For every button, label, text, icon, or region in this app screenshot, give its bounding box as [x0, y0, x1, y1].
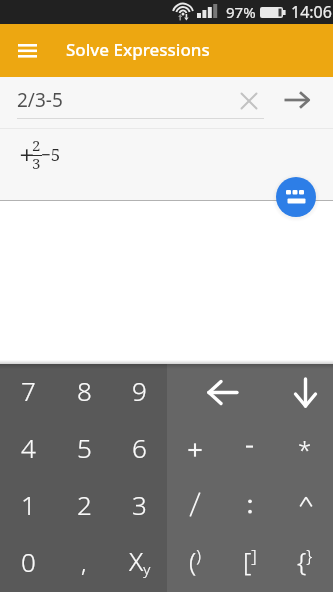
staticText: 2 [32, 135, 41, 155]
staticText: () [189, 543, 201, 578]
staticText: {} [297, 543, 313, 578]
staticText: 2/3-5 [17, 87, 63, 113]
button[interactable]: 9 [112, 364, 167, 421]
button[interactable]: , [56, 535, 112, 592]
staticText: 3 [132, 487, 147, 522]
staticText: −5 [41, 143, 61, 166]
button[interactable]: () [167, 535, 222, 592]
button[interactable]: 4 [0, 421, 56, 478]
button[interactable]: 0 [0, 535, 56, 592]
button[interactable]: {} [277, 535, 332, 592]
staticText: Xy [129, 543, 151, 579]
staticText: 6 [132, 430, 147, 465]
staticText: 8 [77, 373, 92, 408]
button[interactable]: 8 [56, 364, 112, 421]
button[interactable] [12, 36, 42, 66]
staticText: 4 [21, 430, 36, 465]
button[interactable] [277, 478, 332, 535]
button[interactable] [278, 364, 333, 421]
button[interactable]: 6 [112, 421, 167, 478]
staticText: 97% [226, 2, 256, 22]
staticText: 7 [21, 373, 36, 408]
staticText: 1 [21, 487, 36, 522]
staticText: [] [243, 543, 257, 578]
staticText: 3 [32, 153, 41, 173]
button[interactable] [167, 364, 278, 421]
staticText: 0 [21, 544, 36, 579]
button[interactable] [167, 478, 222, 535]
button[interactable]: 2 [56, 478, 112, 535]
staticText: + [19, 135, 35, 173]
button[interactable]: 7 [0, 364, 56, 421]
button[interactable]: * [277, 421, 332, 478]
button[interactable]: 1 [0, 478, 56, 535]
staticText: * [298, 433, 312, 466]
button[interactable]: [] [222, 535, 277, 592]
staticText: 5 [77, 430, 92, 465]
button[interactable] [222, 478, 277, 535]
button[interactable]: Xy [112, 535, 167, 592]
button[interactable]: 5 [56, 421, 112, 478]
staticText: Solve Expressions [66, 38, 210, 61]
staticText: 14:06 [291, 1, 332, 23]
staticText: 2 [77, 487, 92, 522]
button[interactable] [276, 177, 316, 217]
staticText: , [81, 546, 87, 579]
button[interactable]: 3 [112, 478, 167, 535]
button[interactable] [282, 89, 312, 111]
button[interactable] [167, 421, 222, 478]
button[interactable] [222, 421, 277, 478]
button[interactable] [239, 91, 259, 111]
staticText: 9 [132, 373, 147, 408]
